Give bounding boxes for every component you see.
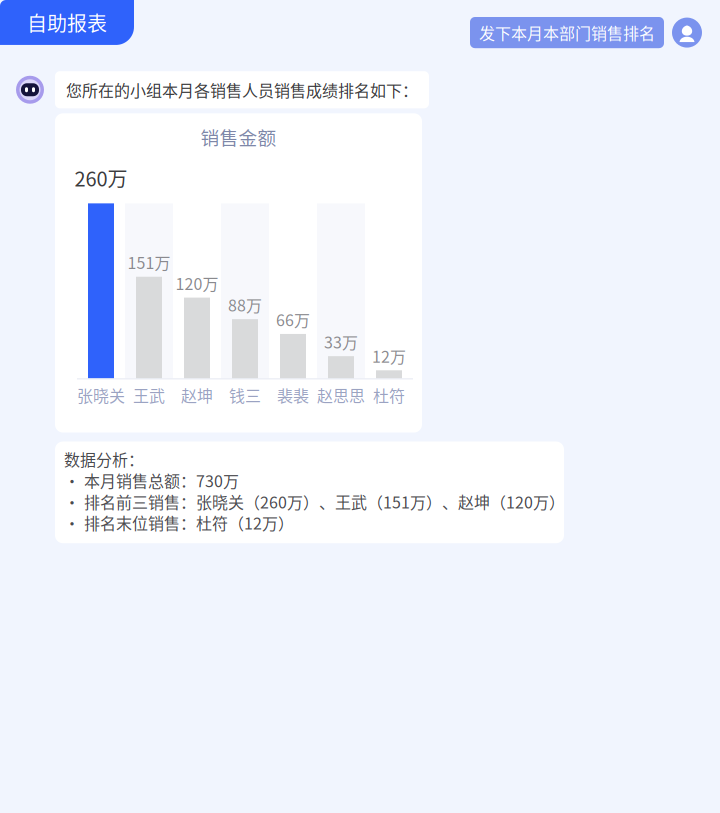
button[interactable]: 自助报表 <box>0 0 134 45</box>
staticText: · 排名前三销售：张晓关（260万）、王武（151万）、赵坤（120万） <box>64 490 565 513</box>
staticText: 12万 <box>372 344 406 367</box>
staticText: 杜符 <box>373 383 405 407</box>
staticText: · 排名末位销售：杜符（12万） <box>64 511 294 534</box>
staticText: 151万 <box>127 251 170 274</box>
staticText: 88万 <box>228 293 262 316</box>
staticText: 发下本月本部门销售排名 <box>479 21 655 44</box>
staticText: 您所在的小组本月各销售人员销售成绩排名如下： <box>66 78 418 101</box>
staticText: 钱三 <box>229 383 261 407</box>
staticText: 赵思思 <box>317 383 365 407</box>
staticText: 裴裴 <box>277 383 309 407</box>
staticText: 120万 <box>175 271 218 295</box>
staticText: 数据分析： <box>64 447 144 471</box>
staticText: 自助报表 <box>27 8 107 37</box>
staticText: 张晓关 <box>77 383 125 407</box>
staticText: 33万 <box>324 330 358 353</box>
staticText: · 本月销售总额：730万 <box>64 469 239 492</box>
staticText: 赵坤 <box>181 383 213 407</box>
staticText: 王武 <box>133 383 165 407</box>
button[interactable]: 发下本月本部门销售排名 <box>470 17 664 48</box>
staticText: 销售金额 <box>200 123 276 150</box>
staticText: 66万 <box>276 308 310 331</box>
staticText: 260万 <box>74 163 127 192</box>
